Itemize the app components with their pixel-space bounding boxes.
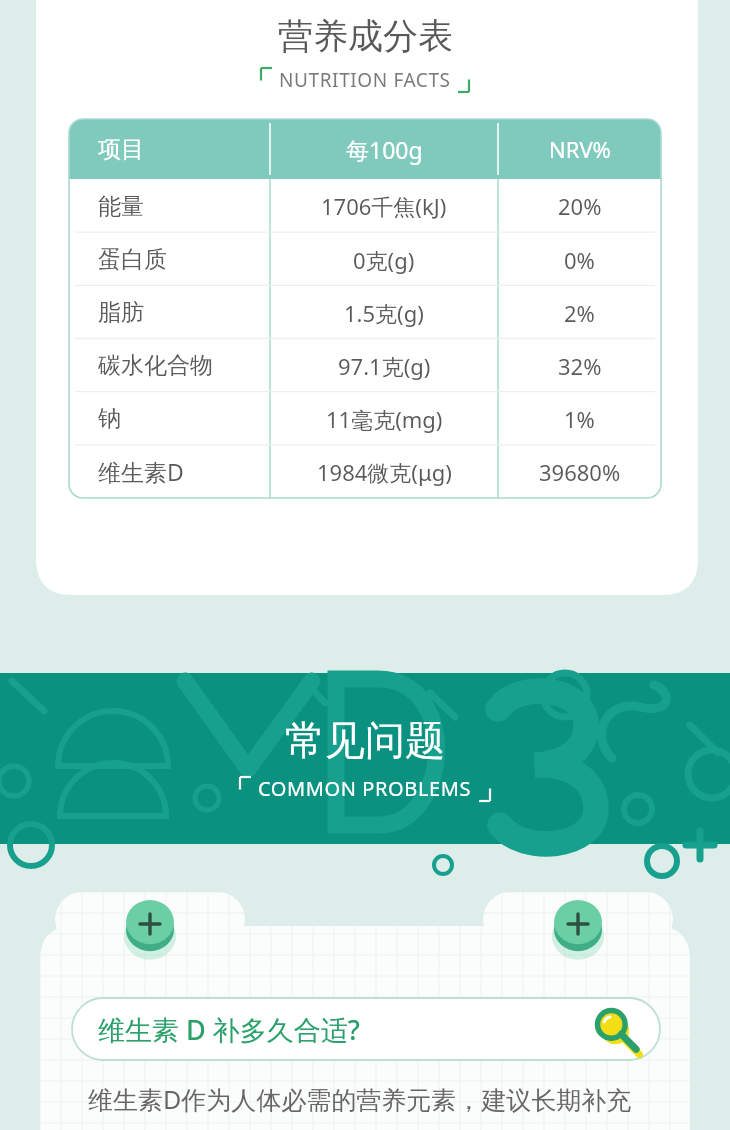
staticText: 1% xyxy=(564,404,595,434)
staticText: 每100g xyxy=(346,134,423,165)
staticText: 1.5克(g) xyxy=(344,298,424,328)
staticText: 0克(g) xyxy=(353,245,415,275)
staticText: 蛋白质 xyxy=(98,245,167,274)
button[interactable]: 维生素 D 补多久合适? xyxy=(72,998,660,1060)
staticText: 项目 xyxy=(98,135,144,164)
staticText: COMMON PROBLEMS xyxy=(258,775,472,802)
staticText: 碳水化合物 xyxy=(98,351,213,380)
staticText: 39680% xyxy=(539,457,621,487)
staticText: 脂肪 xyxy=(98,298,144,327)
staticText: 11毫克(mg) xyxy=(326,404,443,434)
staticText: 2% xyxy=(564,298,595,328)
staticText: 1706千焦(kJ) xyxy=(321,191,447,221)
staticText: 能量 xyxy=(98,192,144,221)
staticText: 维生素D xyxy=(98,456,184,487)
staticText: NUTRITION FACTS xyxy=(279,67,451,93)
staticText: 维生素 D 补多久合适? xyxy=(98,1011,360,1048)
staticText: 20% xyxy=(558,191,602,221)
staticText: 32% xyxy=(558,351,602,381)
staticText: 97.1克(g) xyxy=(338,351,431,381)
other: Search xyxy=(592,1006,638,1052)
staticText: 0% xyxy=(564,245,595,275)
staticText: 钠 xyxy=(98,404,121,433)
staticText: 维生素D作为人体必需的营养元素，建议长期补充 xyxy=(88,1082,632,1116)
staticText: NRV% xyxy=(549,134,611,164)
staticText: 常见问题 xyxy=(285,715,445,765)
staticText: 1984微克(μg) xyxy=(317,457,452,487)
staticText: 营养成分表 xyxy=(278,14,453,58)
